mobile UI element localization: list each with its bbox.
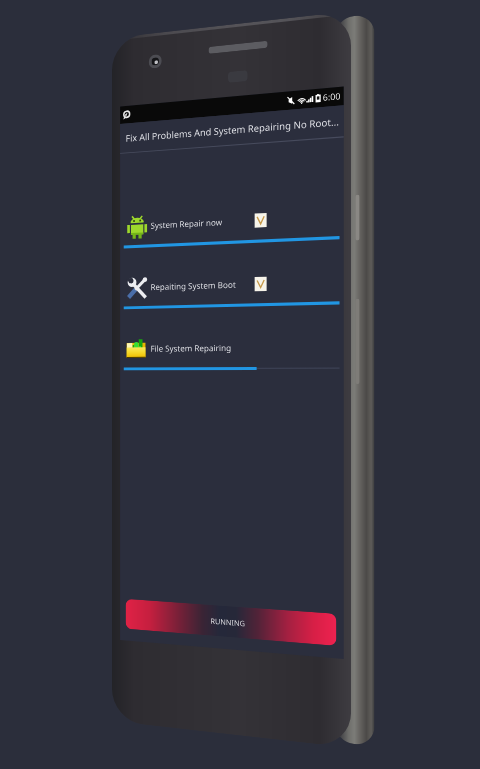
staticText: Repaiting System Boot xyxy=(151,279,237,292)
staticText: 6:00 xyxy=(323,90,341,104)
other: Power xyxy=(355,195,359,241)
staticText: Fix All Problems And System Repairing No… xyxy=(126,115,339,145)
other: WhatsApp notification xyxy=(122,109,131,120)
other: Volume xyxy=(355,299,359,384)
button[interactable]: Repaiting System Boot xyxy=(120,266,344,335)
staticText: RUNNING xyxy=(210,616,246,628)
button[interactable]: Fix All Problems And System Repairing No… xyxy=(120,105,344,153)
button[interactable]: File System Repairing xyxy=(120,331,344,397)
button[interactable]: System Repair now xyxy=(120,201,344,274)
button[interactable]: RUNNING xyxy=(126,599,336,646)
staticText: File System Repairing xyxy=(151,342,232,354)
staticText: System Repair now xyxy=(151,216,223,231)
